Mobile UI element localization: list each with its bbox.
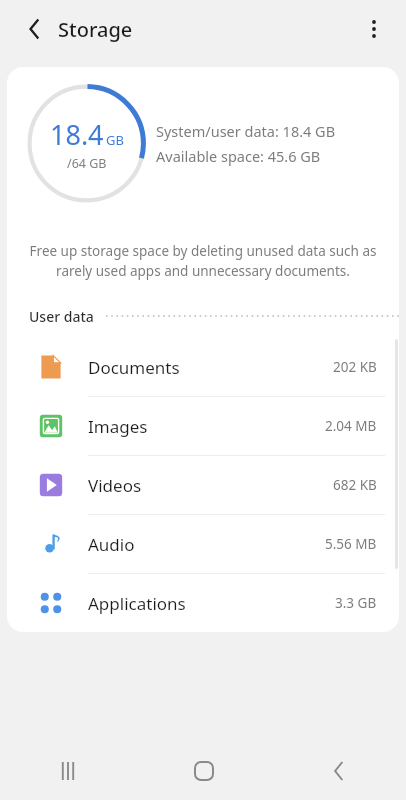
staticText: 682 KB: [333, 476, 377, 494]
button[interactable]: More options: [354, 9, 394, 49]
button[interactable]: Applications: [7, 574, 399, 632]
button[interactable]: Audio: [7, 515, 399, 573]
staticText: Applications: [88, 592, 186, 615]
staticText: User data: [29, 307, 94, 326]
button[interactable]: Recent apps: [0, 742, 136, 800]
staticText: Available space: 45.6 GB: [156, 146, 321, 166]
staticText: Storage: [58, 16, 133, 43]
button[interactable]: Back: [18, 12, 52, 46]
staticText: 18.4: [50, 116, 104, 153]
staticText: System/user data: 18.4 GB: [156, 121, 336, 141]
staticText: Videos: [88, 474, 142, 497]
staticText: 5.56 MB: [325, 535, 377, 553]
staticText: Documents: [88, 356, 180, 379]
staticText: Audio: [88, 533, 135, 556]
staticText: Images: [88, 415, 148, 438]
button[interactable]: Images: [7, 397, 399, 455]
button[interactable]: Home: [136, 742, 271, 800]
button[interactable]: Documents: [7, 338, 399, 396]
staticText: 3.3 GB: [335, 594, 377, 612]
staticText: 2.04 MB: [325, 417, 377, 435]
staticText: 202 KB: [333, 358, 377, 376]
button[interactable]: Videos: [7, 456, 399, 514]
staticText: /64 GB: [67, 155, 107, 172]
staticText: Free up storage space by deleting unused…: [29, 242, 377, 280]
button[interactable]: Back: [271, 742, 406, 800]
staticText: GB: [106, 131, 124, 149]
